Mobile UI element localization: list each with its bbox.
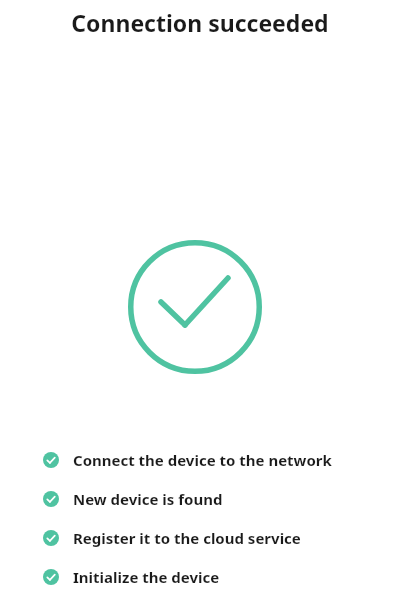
staticText: New device is found: [73, 489, 223, 509]
staticText: Initialize the device: [73, 567, 220, 587]
button[interactable]: Connect the device to the network: [0, 450, 400, 470]
staticText: Connect the device to the network: [73, 450, 332, 470]
button[interactable]: New device is found: [0, 489, 400, 509]
other: Connection succeeded: [128, 240, 262, 374]
button[interactable]: Initialize the device: [0, 567, 400, 587]
button[interactable]: Register it to the cloud service: [0, 528, 400, 548]
staticText: Register it to the cloud service: [73, 528, 301, 548]
staticText: Connection succeeded: [0, 7, 400, 38]
